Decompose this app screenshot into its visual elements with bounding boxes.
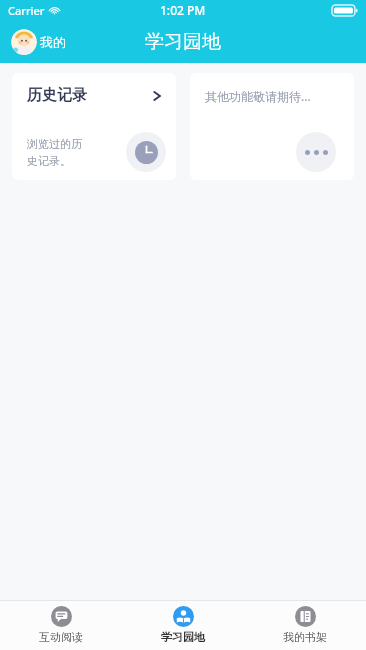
staticText: 其他功能敬请期待... — [205, 88, 311, 104]
staticText: 我的 — [40, 34, 66, 50]
staticText: 互动阅读 — [39, 630, 83, 644]
staticText: 学习园地 — [145, 30, 221, 54]
button[interactable]: 其他功能敬请期待... — [190, 73, 354, 180]
staticText: 浏览过的历 — [27, 137, 82, 151]
other: Open history — [151, 90, 163, 102]
other: 互动阅读 — [51, 606, 72, 627]
button[interactable]: 学习园地 — [122, 601, 244, 650]
staticText: 1:02 PM — [160, 2, 206, 18]
staticText: 历史记录 — [27, 86, 87, 105]
button[interactable]: 我的书架 — [244, 601, 366, 650]
other: 我的书架 — [295, 606, 316, 627]
button[interactable]: 互动阅读 — [0, 601, 122, 650]
button[interactable]: 我的 — [9, 27, 68, 57]
other: 学习园地 — [173, 606, 194, 627]
staticText: 史记录。 — [27, 154, 71, 168]
button[interactable]: 历史记录 — [12, 73, 176, 180]
staticText: 学习园地 — [161, 630, 205, 644]
staticText: 我的书架 — [283, 630, 327, 644]
staticText: Carrier — [8, 3, 45, 18]
